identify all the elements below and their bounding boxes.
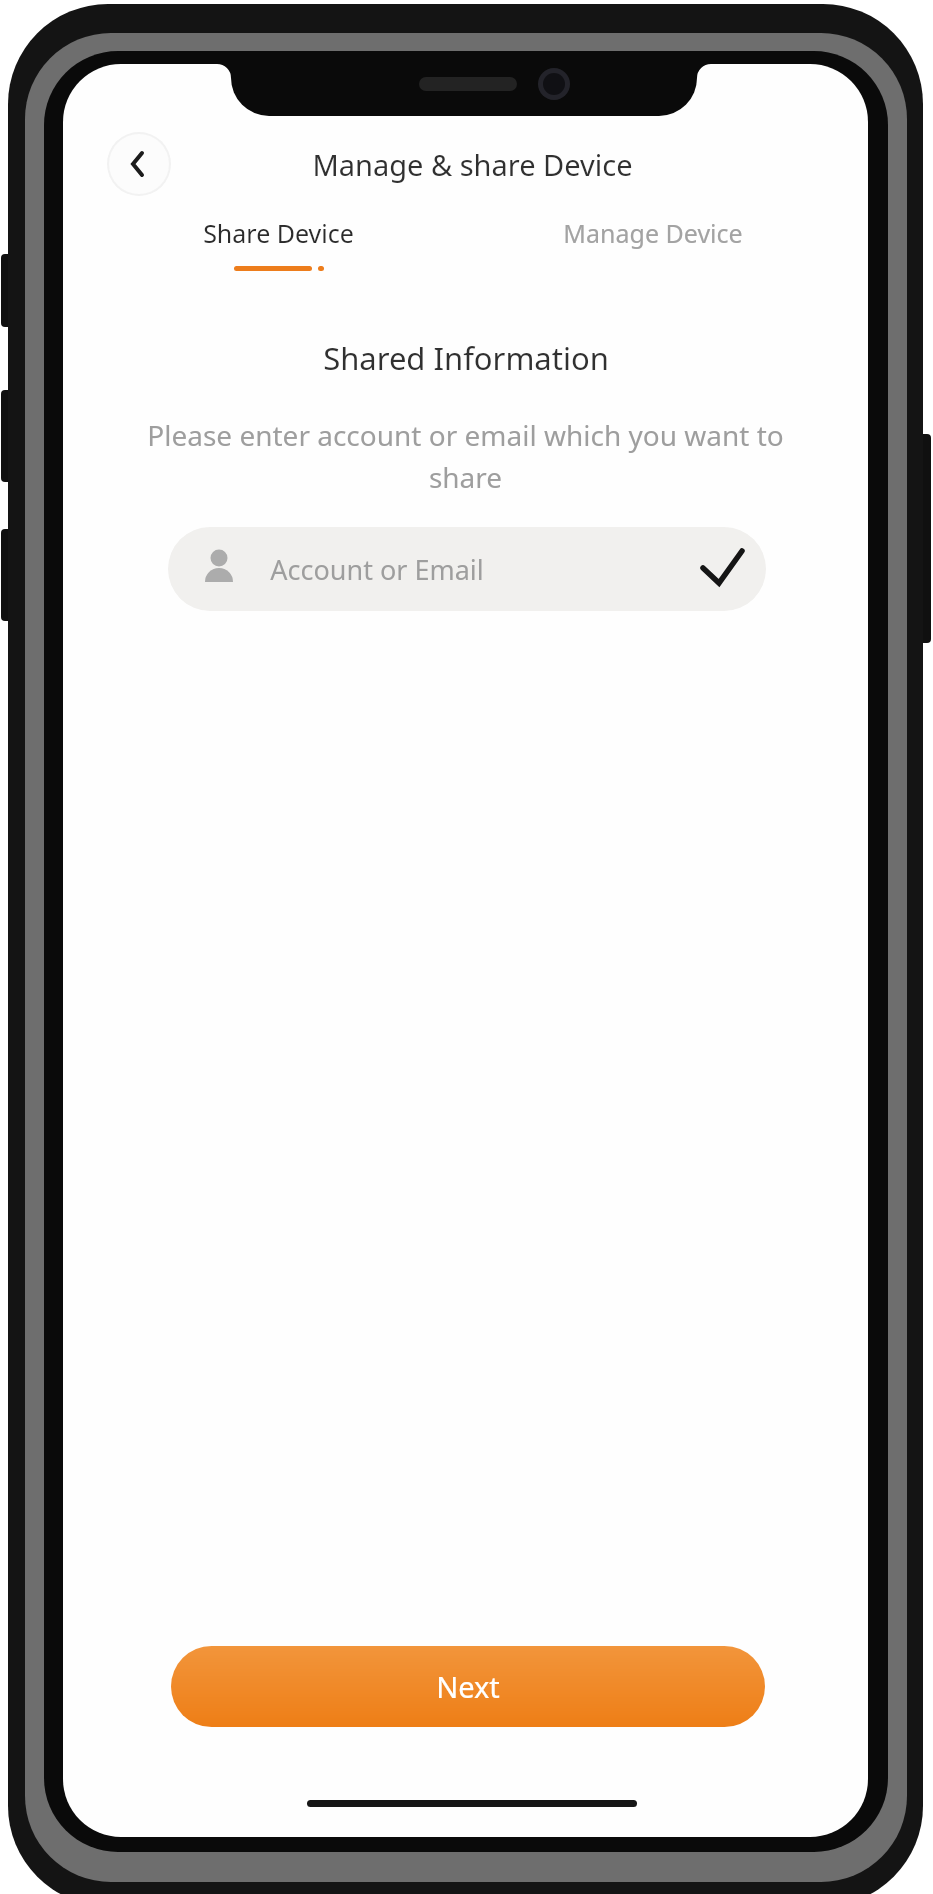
staticText: Next	[436, 1667, 500, 1706]
staticText: Manage & share Device	[312, 145, 633, 184]
button[interactable]: Manage Device	[503, 211, 803, 255]
staticText: Shared Information	[323, 337, 609, 379]
button[interactable]: Share Device	[128, 211, 428, 255]
staticText: Account or Email	[270, 551, 484, 588]
staticText: Share Device	[203, 216, 354, 250]
button[interactable]	[107, 132, 171, 196]
staticText: Manage Device	[563, 216, 743, 250]
button[interactable]: Account or Email	[168, 527, 766, 611]
staticText: Please enter account or email which you …	[147, 416, 784, 496]
button[interactable]: Next	[171, 1646, 765, 1727]
